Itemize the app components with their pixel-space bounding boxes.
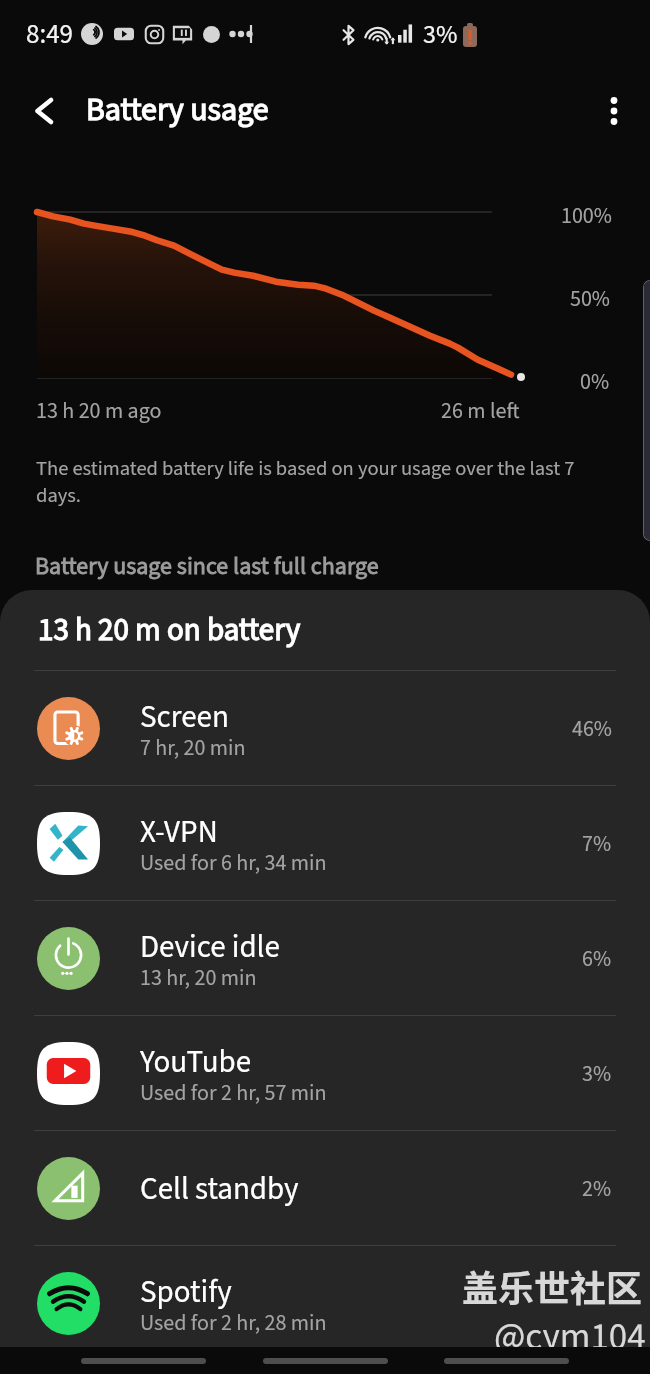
staticText: 盖乐世社区: [462, 1260, 643, 1312]
staticText: Battery usage since last full charge: [35, 549, 379, 583]
staticText: 13 h 20 m on battery: [38, 608, 301, 652]
button[interactable]: YouTube: [0, 1016, 650, 1130]
button[interactable]: Home: [263, 1358, 388, 1364]
staticText: YouTube: [140, 1040, 252, 1084]
staticText: 26 m left: [441, 395, 520, 426]
button[interactable]: Screen: [0, 671, 650, 785]
staticText: Screen: [140, 695, 229, 739]
staticText: Spotify: [140, 1270, 232, 1314]
staticText: Used for 2 hr, 57 min: [140, 1077, 327, 1108]
button[interactable]: Back: [444, 1358, 569, 1364]
staticText: X-VPN: [140, 810, 218, 854]
button[interactable]: Recents: [81, 1358, 206, 1364]
staticText: 46%: [572, 713, 612, 744]
staticText: 100%: [561, 200, 612, 231]
staticText: The estimated battery life is based on y…: [36, 454, 588, 511]
staticText: 2%: [582, 1173, 612, 1204]
staticText: 50%: [570, 283, 610, 314]
staticText: Cell standby: [140, 1167, 299, 1211]
staticText: 7 hr, 20 min: [140, 732, 246, 763]
button[interactable]: Cell standby: [0, 1131, 650, 1245]
button[interactable]: X-VPN: [0, 786, 650, 900]
staticText: 6%: [582, 943, 612, 974]
staticText: 13 hr, 20 min: [140, 962, 257, 993]
button[interactable]: Spotify: [0, 1246, 650, 1360]
button[interactable]: More options: [592, 89, 636, 133]
staticText: @cym104: [494, 1311, 646, 1364]
staticText: 13 h 20 m ago: [36, 395, 162, 426]
staticText: Used for 6 hr, 34 min: [140, 847, 327, 878]
staticText: 0%: [580, 366, 610, 397]
staticText: 8:49: [26, 15, 73, 53]
button[interactable]: Device idle: [0, 901, 650, 1015]
button[interactable]: Navigate up: [22, 89, 66, 133]
staticText: 7%: [582, 828, 612, 859]
staticText: 3%: [423, 16, 458, 53]
staticText: 3%: [582, 1058, 612, 1089]
staticText: Device idle: [140, 925, 280, 969]
staticText: Used for 2 hr, 28 min: [140, 1307, 327, 1338]
staticText: Battery usage: [86, 87, 269, 133]
